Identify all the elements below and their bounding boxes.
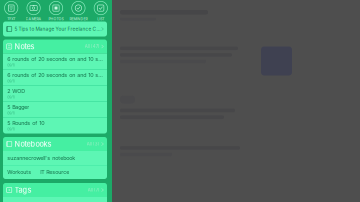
staticText: 09/11 bbox=[7, 95, 14, 99]
button[interactable]: PHOTOS bbox=[45, 0, 67, 21]
button[interactable]: CAMERA bbox=[22, 0, 45, 21]
button[interactable]: LIST bbox=[90, 0, 112, 21]
button[interactable]: 6 rounds of 20 seconds on and 10 s… bbox=[3, 53, 107, 69]
staticText: CAMERA bbox=[26, 17, 42, 21]
staticText: 5 Rounds of 10 bbox=[7, 120, 44, 126]
staticText: Tags bbox=[15, 186, 32, 194]
button[interactable]: suzannecrowell's notebook bbox=[3, 151, 107, 165]
staticText: 2 WOD bbox=[7, 88, 25, 94]
staticText: REMINDER bbox=[69, 17, 87, 21]
staticText: 5 Bagger bbox=[7, 104, 29, 110]
staticText: 09/11 bbox=[7, 79, 14, 83]
staticText: TEXT bbox=[7, 17, 15, 21]
staticText: 5 Tips to Manage Your Freelance Car… bbox=[15, 26, 101, 32]
staticText: All (47) bbox=[85, 44, 100, 49]
staticText: LIST bbox=[97, 17, 104, 21]
button[interactable]: Notes bbox=[3, 39, 107, 53]
staticText: 09/11 bbox=[7, 111, 14, 115]
staticText: All (7) bbox=[88, 187, 100, 193]
button[interactable]: Notebooks bbox=[3, 137, 107, 151]
staticText: Notes bbox=[15, 42, 35, 51]
staticText: Notebooks bbox=[15, 140, 52, 148]
button[interactable]: TEXT bbox=[0, 0, 22, 21]
staticText: suzannecrowell's notebook bbox=[7, 155, 75, 161]
staticText: All (3) bbox=[87, 141, 100, 147]
button[interactable]: 5 Bagger bbox=[3, 101, 107, 117]
button[interactable]: Tags bbox=[3, 183, 107, 197]
button[interactable]: Workouts bbox=[3, 165, 107, 179]
staticText: 09/11 bbox=[7, 127, 14, 131]
button[interactable]: 5 Rounds of 10 bbox=[3, 117, 107, 133]
button[interactable]: 5 Tips to Manage Your Freelance Car… bbox=[3, 21, 107, 36]
button[interactable]: 6 rounds of 20 seconds on and 10 s… bbox=[3, 69, 107, 85]
staticText: Workouts bbox=[7, 169, 31, 175]
staticText: IT Resource bbox=[40, 169, 69, 175]
staticText: 6 rounds of 20 seconds on and 10 s… bbox=[7, 72, 103, 78]
staticText: 09/11 bbox=[7, 63, 14, 67]
staticText: 6 rounds of 20 seconds on and 10 s… bbox=[7, 56, 103, 62]
button[interactable]: REMINDER bbox=[67, 0, 90, 21]
button[interactable]: 2 WOD bbox=[3, 85, 107, 101]
staticText: PHOTOS bbox=[48, 17, 63, 21]
